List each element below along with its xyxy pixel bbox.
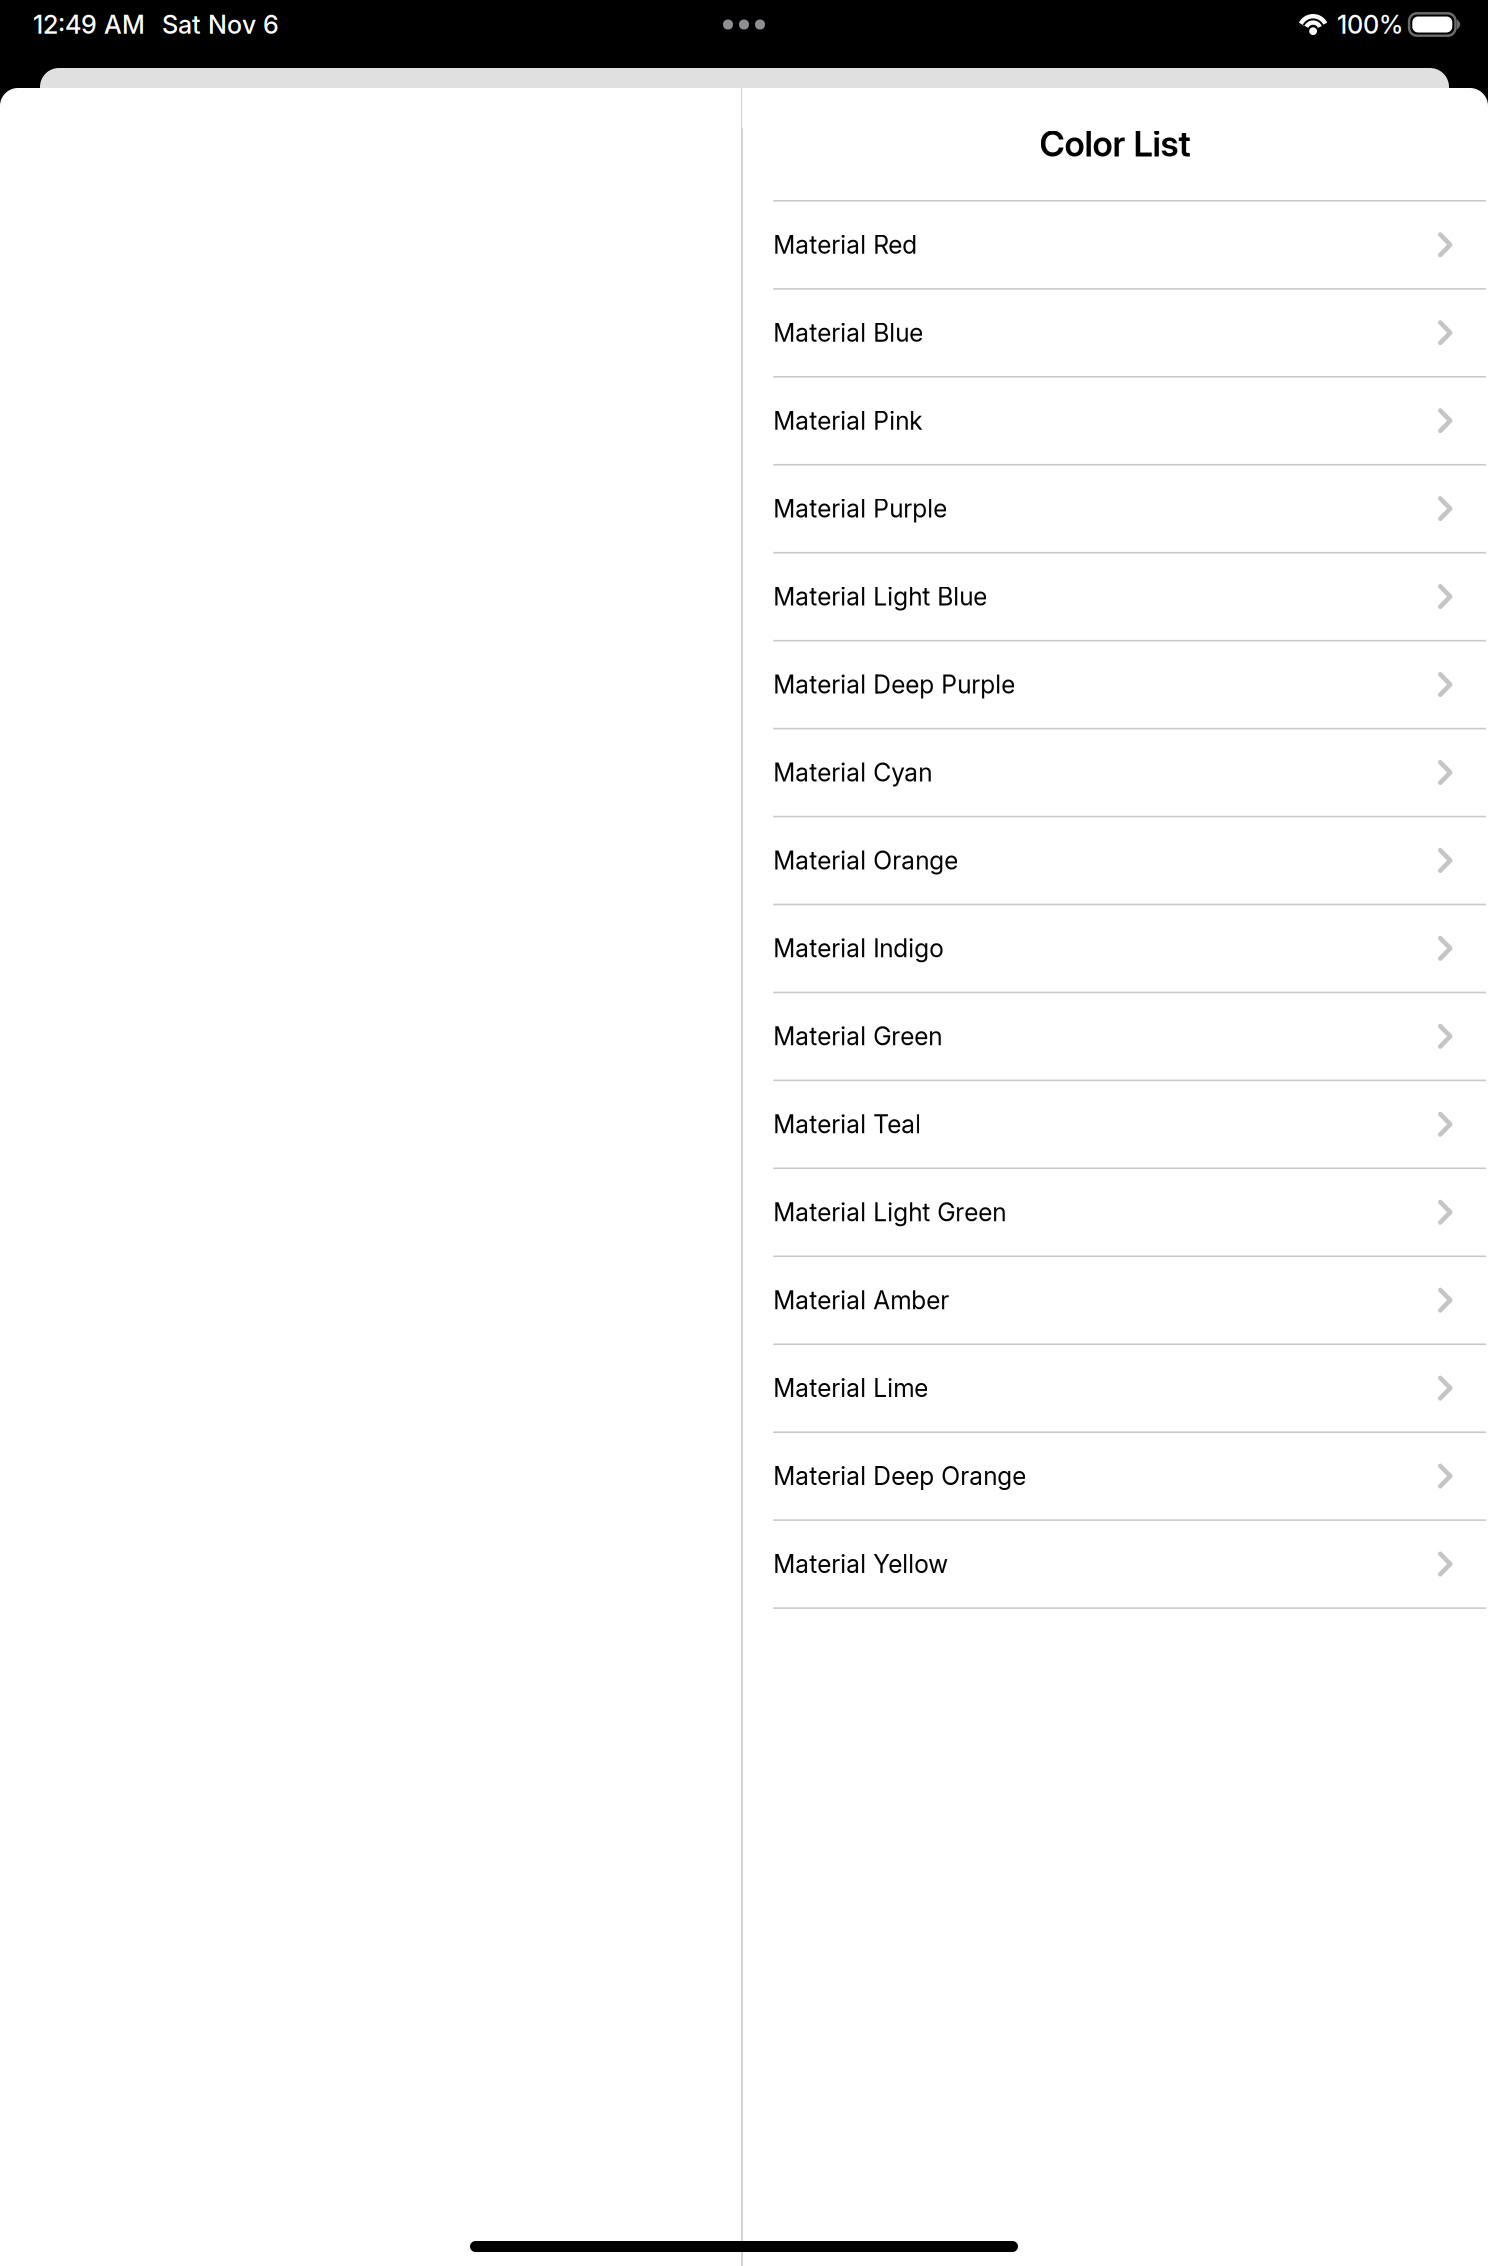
staticText: Sat Nov 6: [162, 9, 279, 40]
staticText: Material Light Blue: [773, 582, 987, 611]
button[interactable]: Material Amber: [742, 1257, 1488, 1345]
staticText: Material Blue: [773, 318, 923, 348]
button[interactable]: Material Purple: [742, 465, 1488, 553]
button[interactable]: Material Yellow: [742, 1521, 1488, 1609]
staticText: Material Green: [773, 1021, 942, 1051]
staticText: Material Lime: [773, 1373, 928, 1403]
button[interactable]: Material Teal: [742, 1081, 1488, 1169]
button[interactable]: Material Red: [742, 202, 1488, 290]
staticText: 12:49 AM: [33, 9, 145, 40]
button[interactable]: Material Orange: [742, 817, 1488, 905]
staticText: Material Deep Purple: [773, 670, 1015, 699]
button[interactable]: Material Blue: [742, 290, 1488, 378]
button[interactable]: Material Lime: [742, 1345, 1488, 1433]
staticText: 100%: [1337, 9, 1403, 40]
button[interactable]: Material Pink: [742, 377, 1488, 465]
button[interactable]: Material Indigo: [742, 905, 1488, 993]
staticText: Material Purple: [773, 494, 947, 523]
button[interactable]: Material Light Green: [742, 1169, 1488, 1257]
button[interactable]: Material Cyan: [742, 729, 1488, 817]
staticText: Material Indigo: [773, 933, 943, 963]
staticText: Material Yellow: [773, 1549, 948, 1579]
button[interactable]: Material Light Blue: [742, 553, 1488, 641]
staticText: Material Deep Orange: [773, 1461, 1026, 1491]
staticText: Color List: [1040, 123, 1191, 165]
button[interactable]: Material Deep Orange: [742, 1433, 1488, 1521]
staticText: Material Pink: [773, 406, 922, 436]
button[interactable]: Material Green: [742, 993, 1488, 1081]
staticText: Material Light Green: [773, 1197, 1006, 1227]
staticText: Material Amber: [773, 1285, 949, 1315]
staticText: Material Cyan: [773, 758, 932, 787]
staticText: Material Red: [773, 230, 917, 260]
staticText: Material Orange: [773, 845, 958, 875]
staticText: Material Teal: [773, 1109, 921, 1139]
button[interactable]: Material Deep Purple: [742, 641, 1488, 729]
